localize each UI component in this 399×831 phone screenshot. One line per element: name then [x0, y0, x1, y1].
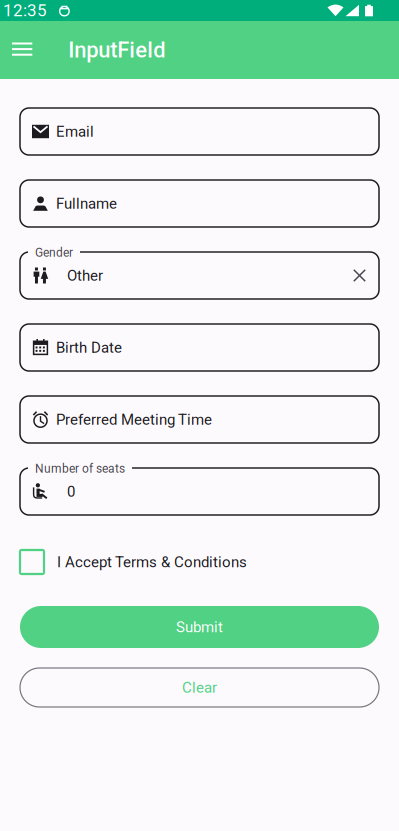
staticText: Gender [35, 245, 73, 260]
button[interactable]: Clear [0, 668, 399, 707]
staticText: 0 [67, 483, 75, 500]
staticText: Number of seats [35, 461, 125, 476]
staticText: Preferred Meeting Time [56, 411, 212, 428]
button[interactable]: I Accept Terms & Conditions [0, 550, 399, 574]
staticText: 12:35 [3, 0, 47, 20]
staticText: InputField [68, 37, 165, 63]
staticText: Fullname [56, 195, 117, 212]
button[interactable]: Menu [0, 21, 43, 79]
button[interactable]: Clear [349, 262, 370, 289]
button[interactable]: Submit [0, 606, 399, 648]
staticText: Clear [182, 679, 217, 696]
staticText: Email [56, 123, 94, 140]
staticText: Birth Date [56, 339, 122, 356]
staticText: I Accept Terms & Conditions [57, 553, 247, 571]
staticText: Other [67, 267, 103, 284]
staticText: Submit [176, 618, 223, 636]
